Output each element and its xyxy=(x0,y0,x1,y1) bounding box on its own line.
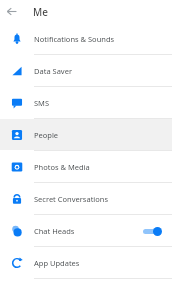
button[interactable]: Photos & Media xyxy=(0,151,172,182)
button[interactable]: Chat Heads xyxy=(0,215,172,246)
button[interactable]: Secret Conversations xyxy=(0,183,172,214)
staticText: Chat Heads xyxy=(34,226,75,236)
staticText: App Updates xyxy=(34,258,80,268)
staticText: SMS xyxy=(34,98,50,108)
button[interactable]: Data Saver xyxy=(0,55,172,86)
button[interactable]: People xyxy=(0,119,172,150)
staticText: Data Saver xyxy=(34,66,73,76)
staticText: Notifications & Sounds xyxy=(34,34,115,44)
button[interactable]: App Updates xyxy=(0,247,172,278)
button[interactable]: Chat Heads toggle xyxy=(142,225,162,237)
staticText: Secret Conversations xyxy=(34,194,109,204)
staticText: Photos & Media xyxy=(34,162,90,172)
staticText: Me xyxy=(33,5,48,19)
button[interactable]: Back xyxy=(0,0,23,23)
staticText: People xyxy=(34,130,59,140)
button[interactable]: Notifications & Sounds xyxy=(0,23,172,54)
button[interactable]: SMS xyxy=(0,87,172,118)
